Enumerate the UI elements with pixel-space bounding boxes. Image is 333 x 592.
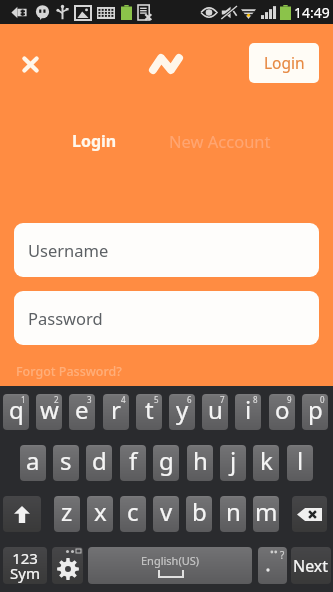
- button[interactable]: n: [220, 496, 246, 532]
- staticText: c: [127, 496, 139, 528]
- button[interactable]: m: [253, 496, 279, 532]
- staticText: 3: [87, 394, 92, 405]
- button[interactable]: h: [187, 445, 213, 481]
- button[interactable]: a: [20, 445, 46, 481]
- staticText: j: [230, 445, 237, 477]
- button[interactable]: k: [253, 445, 279, 481]
- staticText: l: [297, 445, 304, 477]
- staticText: m: [255, 496, 278, 528]
- staticText: 7: [220, 394, 225, 405]
- staticText: w: [40, 394, 59, 426]
- button[interactable]: Backspace: [292, 496, 327, 532]
- staticText: Username: [28, 239, 109, 261]
- button[interactable]: z: [54, 496, 80, 532]
- button[interactable]: s: [53, 445, 79, 481]
- staticText: h: [193, 445, 208, 477]
- staticText: e: [75, 394, 89, 426]
- button[interactable]: f: [120, 445, 146, 481]
- staticText: r: [111, 394, 121, 426]
- staticText: Login: [264, 52, 305, 73]
- staticText: ?: [280, 548, 285, 562]
- button[interactable]: Password: [14, 291, 319, 345]
- button[interactable]: c: [120, 496, 146, 532]
- staticText: f: [129, 445, 138, 477]
- staticText: p: [308, 394, 323, 426]
- staticText: n: [226, 496, 241, 528]
- button[interactable]: v: [153, 496, 179, 532]
- button[interactable]: 1: [3, 394, 29, 430]
- staticText: Login: [72, 130, 117, 152]
- button[interactable]: g: [153, 445, 179, 481]
- staticText: y: [176, 394, 189, 426]
- button[interactable]: 4: [103, 394, 129, 430]
- button[interactable]: 123 Sym: [3, 547, 47, 584]
- staticText: Next: [293, 555, 329, 577]
- staticText: 9: [287, 394, 292, 405]
- button[interactable]: Next: [291, 547, 331, 584]
- staticText: 8: [253, 394, 258, 405]
- staticText: u: [208, 394, 223, 426]
- staticText: New Account: [169, 130, 271, 152]
- staticText: 6: [187, 394, 192, 405]
- staticText: English(US): [141, 553, 200, 568]
- staticText: s: [60, 445, 72, 477]
- button[interactable]: Login: [30, 123, 158, 159]
- staticText: 14:49: [294, 3, 330, 22]
- staticText: Password: [28, 307, 103, 329]
- staticText: 5: [154, 394, 159, 405]
- staticText: 0: [320, 394, 325, 405]
- button[interactable]: ?: [258, 547, 287, 584]
- button[interactable]: d: [86, 445, 112, 481]
- button[interactable]: x: [87, 496, 113, 532]
- staticText: z: [61, 496, 73, 528]
- button[interactable]: 6: [169, 394, 195, 430]
- button[interactable]: Settings: [52, 547, 83, 584]
- staticText: t: [145, 394, 154, 426]
- button[interactable]: 7: [202, 394, 228, 430]
- staticText: 2: [54, 394, 59, 405]
- button[interactable]: Shift: [3, 496, 41, 532]
- staticText: k: [260, 445, 273, 477]
- staticText: d: [92, 445, 107, 477]
- button[interactable]: 0: [302, 394, 328, 430]
- button[interactable]: b: [186, 496, 212, 532]
- staticText: 4: [121, 394, 126, 405]
- staticText: b: [192, 496, 207, 528]
- button[interactable]: 5: [136, 394, 162, 430]
- button[interactable]: Forgot Password?: [16, 363, 122, 380]
- button[interactable]: l: [287, 445, 313, 481]
- button[interactable]: Space: [88, 547, 252, 584]
- button[interactable]: 3: [69, 394, 95, 430]
- staticText: 1: [21, 394, 26, 405]
- button[interactable]: 8: [235, 394, 261, 430]
- staticText: v: [160, 496, 173, 528]
- staticText: i: [245, 394, 252, 426]
- button[interactable]: New Account: [156, 123, 284, 159]
- staticText: q: [9, 394, 24, 426]
- staticText: g: [159, 445, 174, 477]
- button[interactable]: Close: [14, 48, 46, 80]
- button[interactable]: Username: [14, 223, 319, 277]
- button[interactable]: j: [220, 445, 246, 481]
- staticText: o: [275, 394, 290, 426]
- button[interactable]: 2: [36, 394, 62, 430]
- button[interactable]: 9: [269, 394, 295, 430]
- staticText: a: [26, 445, 40, 477]
- staticText: x: [94, 496, 107, 528]
- staticText: 123 Sym: [10, 548, 40, 583]
- button[interactable]: Login: [249, 43, 319, 83]
